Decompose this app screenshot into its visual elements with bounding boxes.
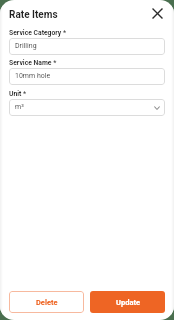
staticText: Unit * <box>9 90 27 98</box>
staticText: Service Name * <box>9 59 57 67</box>
staticText: Update <box>116 298 140 307</box>
staticText: Drilling <box>15 42 37 50</box>
staticText: 10mm hole <box>15 72 51 80</box>
staticText: Delete <box>36 298 58 307</box>
button[interactable]: Update <box>90 291 165 313</box>
button[interactable]: 10mm hole <box>15 68 161 85</box>
button[interactable]: Close <box>147 3 167 23</box>
staticText: m³ <box>15 103 24 111</box>
button[interactable]: m³ <box>15 99 161 116</box>
staticText: Rate Items <box>9 9 58 21</box>
staticText: Service Category * <box>9 29 67 37</box>
button[interactable]: Drilling <box>15 38 161 55</box>
button[interactable]: Delete <box>9 291 84 313</box>
